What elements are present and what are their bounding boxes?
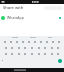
button[interactable]: Send (58, 59, 62, 63)
staticText: WhatsApp (7, 15, 24, 20)
button[interactable]: Share with (0, 4, 64, 11)
button[interactable]: WhatsApp (0, 13, 64, 22)
staticText: Share with (3, 5, 24, 10)
